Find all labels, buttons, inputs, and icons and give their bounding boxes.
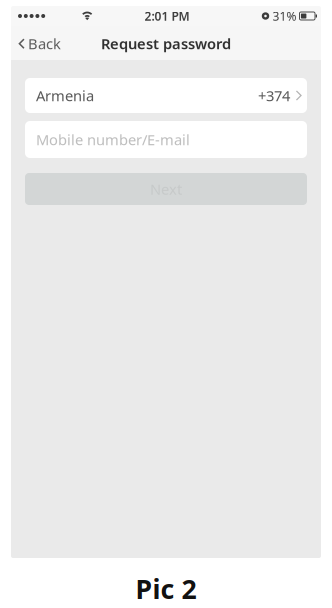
staticText: Request password — [101, 34, 231, 53]
staticText: Back — [28, 34, 61, 53]
staticText: 31% — [272, 8, 296, 24]
button[interactable]: Mobile number/E-mail — [25, 121, 307, 158]
button[interactable]: Back — [11, 28, 71, 58]
staticText: Pic 2 — [135, 571, 196, 606]
staticText: Next — [150, 179, 182, 199]
button[interactable]: Armenia — [25, 78, 307, 113]
staticText: 2:01 PM — [144, 8, 189, 24]
staticText: +374 — [258, 86, 290, 105]
staticText: Armenia — [36, 86, 94, 105]
staticText: Mobile number/E-mail — [36, 130, 190, 149]
